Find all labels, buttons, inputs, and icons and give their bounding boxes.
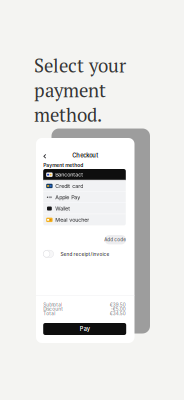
button[interactable]: Pay bbox=[43, 323, 126, 335]
staticText: €39.50 bbox=[110, 302, 126, 307]
button[interactable]: Back bbox=[41, 152, 48, 160]
button[interactable]: Send receipt or invoice bbox=[43, 250, 54, 258]
button[interactable]: Apple Pay bbox=[43, 192, 126, 203]
staticText: Apple Pay bbox=[55, 194, 80, 200]
staticText: Select your payment method. bbox=[34, 53, 126, 127]
staticText: Add code bbox=[104, 237, 126, 242]
staticText: Meal voucher bbox=[55, 217, 89, 223]
staticText: Subtotal bbox=[43, 302, 62, 307]
staticText: Discount bbox=[43, 306, 63, 312]
staticText: Send receipt/invoice bbox=[60, 251, 109, 257]
staticText: Total bbox=[43, 311, 55, 316]
button[interactable]: Bancontact bbox=[43, 169, 126, 180]
button[interactable]: Add code bbox=[105, 235, 126, 244]
button[interactable]: Credit card bbox=[43, 180, 126, 192]
staticText: Wallet bbox=[55, 205, 70, 212]
staticText: Checkout bbox=[72, 152, 98, 159]
button[interactable]: Wallet bbox=[43, 203, 126, 214]
button[interactable]: Meal voucher bbox=[43, 214, 126, 225]
staticText: Credit card bbox=[55, 183, 83, 189]
staticText: Payment method bbox=[43, 162, 83, 168]
staticText: €34.50 bbox=[110, 311, 126, 316]
staticText: -€5.00 bbox=[111, 306, 126, 312]
staticText: Bancontact bbox=[55, 171, 83, 178]
staticText: Pay bbox=[80, 326, 90, 332]
